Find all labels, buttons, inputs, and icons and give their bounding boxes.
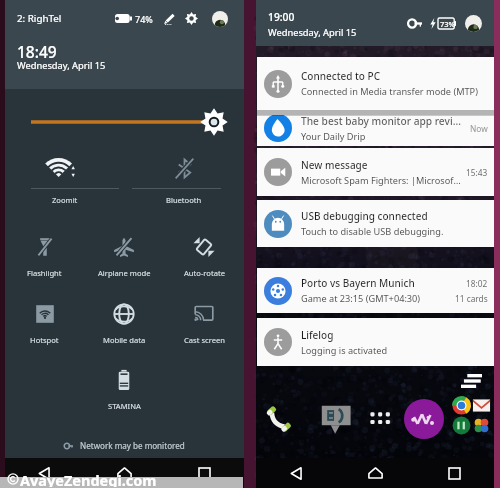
button[interactable]: Messages bbox=[452, 416, 471, 435]
staticText: 73% bbox=[440, 19, 455, 29]
staticText: Cast screen bbox=[184, 335, 225, 345]
staticText: Flashlight bbox=[27, 268, 62, 278]
button[interactable]: Edit quick settings bbox=[163, 13, 175, 25]
button[interactable]: Phone bbox=[264, 401, 297, 434]
button[interactable]: STAMINA bbox=[84, 367, 164, 422]
staticText: USB debugging connected bbox=[301, 209, 428, 223]
button[interactable]: Flashlight bbox=[5, 234, 84, 289]
staticText: New message bbox=[301, 158, 368, 172]
staticText: Auto-rotate bbox=[184, 268, 225, 278]
staticText: Now bbox=[470, 123, 488, 134]
staticText: Network may be monitored bbox=[80, 440, 185, 451]
staticText: Zoomit bbox=[52, 195, 78, 205]
staticText: Mobile data bbox=[103, 335, 146, 345]
button[interactable]: Chrome bbox=[452, 396, 471, 415]
staticText: Your Daily Drip bbox=[301, 130, 366, 143]
button[interactable]: Home bbox=[84, 458, 164, 488]
button[interactable]: Airplane mode bbox=[84, 234, 164, 289]
button[interactable]: Recent apps bbox=[415, 458, 494, 488]
staticText: Touch to disable USB debugging. bbox=[301, 225, 444, 238]
button[interactable]: Lifelog bbox=[257, 318, 494, 366]
button[interactable]: Throw bbox=[461, 374, 482, 388]
button[interactable]: Network may be monitored bbox=[5, 435, 244, 456]
staticText: 18:49 bbox=[17, 41, 57, 62]
staticText: Connected in Media transfer mode (MTP) bbox=[301, 85, 478, 98]
button[interactable]: Recent apps bbox=[164, 458, 244, 488]
button[interactable]: Settings bbox=[185, 12, 198, 25]
staticText: Hotspot bbox=[30, 335, 59, 345]
button[interactable]: Connected to PC bbox=[257, 57, 494, 110]
staticText: Porto vs Bayern Munich bbox=[301, 276, 415, 290]
button[interactable]: Hotspot bbox=[5, 301, 84, 356]
button[interactable]: Photos bbox=[472, 416, 491, 435]
button[interactable]: The best baby monitor app revi… bbox=[257, 110, 494, 146]
staticText: 11 cards bbox=[455, 293, 488, 304]
staticText: Bluetooth bbox=[166, 195, 202, 205]
button[interactable]: New message bbox=[257, 148, 494, 196]
button[interactable]: Porto vs Bayern Munich bbox=[257, 268, 494, 313]
staticText: 15:43 bbox=[466, 167, 488, 178]
button[interactable]: Home bbox=[336, 458, 415, 488]
button[interactable]: Cast screen bbox=[164, 301, 244, 356]
staticText: 19:00 bbox=[268, 10, 295, 24]
button[interactable]: Brightness bbox=[5, 104, 244, 140]
button[interactable]: Apps bbox=[364, 402, 396, 434]
button[interactable]: User profile bbox=[212, 11, 228, 27]
button[interactable]: Messaging bbox=[320, 400, 356, 436]
button[interactable]: Walkman bbox=[404, 399, 444, 439]
button[interactable]: Auto-rotate bbox=[164, 234, 244, 289]
staticText: STAMINA bbox=[108, 401, 141, 411]
staticText: Wednesday, April 15 bbox=[268, 26, 357, 39]
staticText: Wednesday, April 15 bbox=[17, 59, 106, 72]
button[interactable]: Back bbox=[256, 458, 336, 488]
button[interactable]: Gmail bbox=[472, 396, 491, 415]
button[interactable]: USB debugging connected bbox=[257, 200, 494, 247]
staticText: Game at 23:15 (GMT+04:30) bbox=[301, 292, 421, 305]
staticText: 18:02 bbox=[466, 278, 488, 289]
staticText: The best baby monitor app revi… bbox=[301, 114, 461, 128]
button[interactable]: Bluetooth bbox=[124, 150, 244, 186]
staticText: 74% bbox=[135, 13, 153, 25]
staticText: Logging is activated bbox=[301, 344, 388, 357]
staticText: AvayeZendegi.com bbox=[20, 470, 157, 487]
button[interactable]: User profile bbox=[465, 15, 482, 32]
button[interactable]: Back bbox=[5, 458, 84, 488]
staticText: 2: RighTel bbox=[17, 12, 62, 25]
button[interactable]: Wi-Fi bbox=[5, 150, 124, 186]
staticText: Microsoft Spam Fighters: |Microsoft Spam… bbox=[301, 174, 463, 187]
button[interactable]: Mobile data bbox=[84, 301, 164, 356]
staticText: Airplane mode bbox=[98, 268, 151, 278]
staticText: Lifelog bbox=[301, 328, 334, 342]
staticText: Connected to PC bbox=[301, 69, 381, 83]
